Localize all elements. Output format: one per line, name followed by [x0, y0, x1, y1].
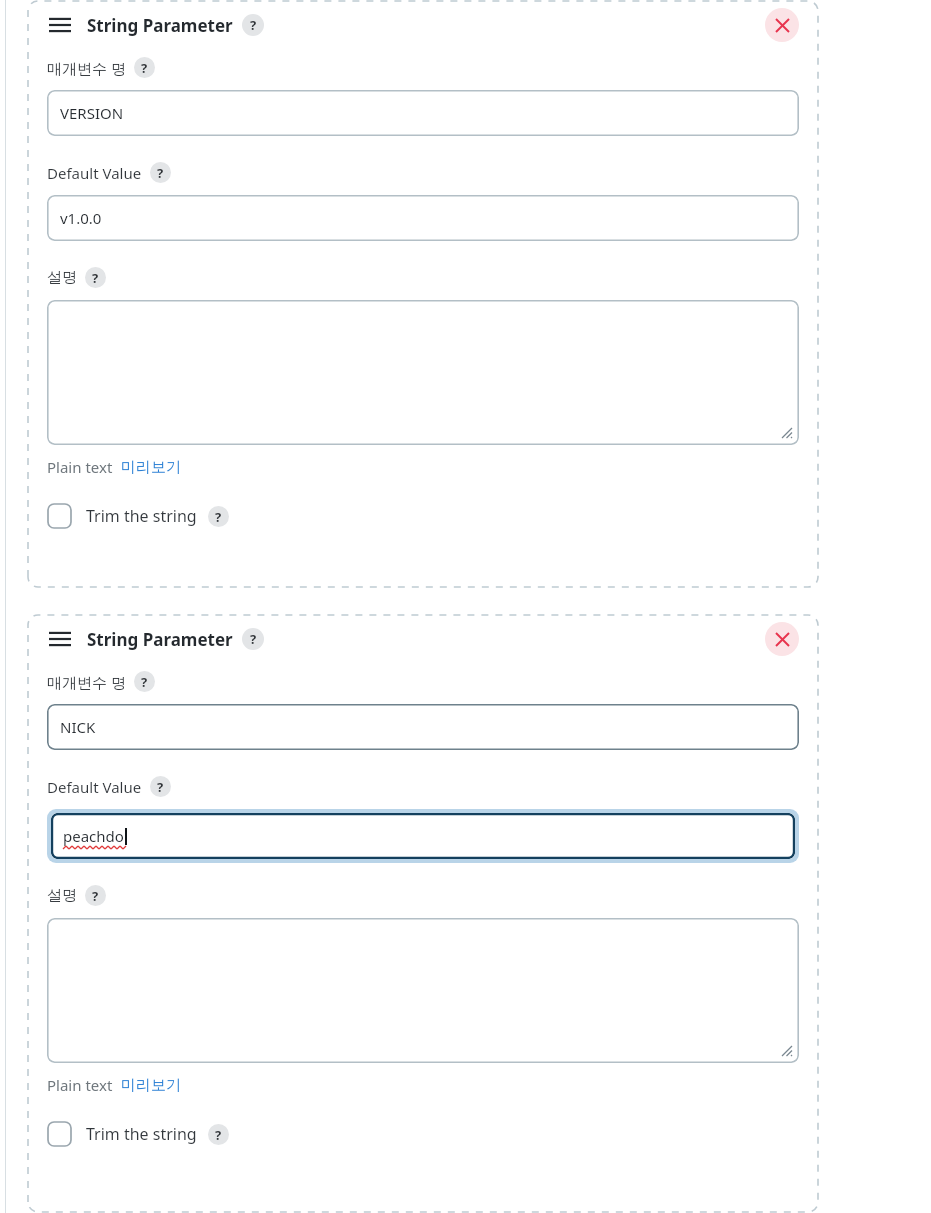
staticText: ?: [215, 508, 222, 526]
button[interactable]: Trim the string: [47, 1121, 229, 1147]
button[interactable]: ?: [242, 628, 264, 650]
staticText: Default Value: [47, 777, 142, 797]
button[interactable]: v1.0.0: [47, 195, 799, 241]
staticText: peachdo: [63, 826, 124, 846]
button[interactable]: [47, 918, 799, 1063]
button[interactable]: 미리보기: [121, 458, 181, 477]
staticText: NICK: [60, 717, 96, 737]
staticText: Default Value: [47, 163, 142, 183]
staticText: ?: [250, 16, 257, 34]
button[interactable]: Drag handle: [47, 14, 73, 36]
staticText: VERSION: [60, 103, 124, 123]
button[interactable]: ?: [150, 162, 171, 183]
button[interactable]: ?: [208, 506, 229, 527]
button[interactable]: peachdo: [51, 813, 795, 859]
staticText: Plain text: [47, 457, 113, 477]
staticText: 매개변수 명: [47, 58, 126, 78]
button[interactable]: VERSION: [47, 90, 799, 136]
staticText: 설명: [47, 886, 77, 905]
staticText: ?: [141, 673, 148, 691]
button[interactable]: NICK: [47, 704, 799, 750]
staticText: ?: [250, 630, 257, 648]
staticText: ?: [157, 778, 164, 796]
staticText: ?: [92, 269, 99, 287]
staticText: ?: [215, 1126, 222, 1144]
staticText: ?: [92, 887, 99, 905]
button[interactable]: ?: [85, 267, 106, 288]
button[interactable]: Delete parameter: [765, 8, 799, 42]
staticText: String Parameter: [87, 628, 233, 651]
button[interactable]: ?: [85, 885, 106, 906]
staticText: 매개변수 명: [47, 672, 126, 692]
button[interactable]: ?: [150, 776, 171, 797]
button[interactable]: Drag handle: [47, 628, 73, 650]
staticText: Trim the string: [86, 1123, 197, 1145]
staticText: ?: [157, 164, 164, 182]
staticText: ?: [141, 59, 148, 77]
button[interactable]: ?: [134, 57, 155, 78]
staticText: 설명: [47, 268, 77, 287]
staticText: Plain text: [47, 1075, 113, 1095]
button[interactable]: ?: [134, 671, 155, 692]
button[interactable]: Trim the string: [47, 503, 229, 529]
button[interactable]: [47, 300, 799, 445]
staticText: Trim the string: [86, 505, 197, 527]
staticText: String Parameter: [87, 14, 233, 37]
button[interactable]: Delete parameter: [765, 622, 799, 656]
button[interactable]: 미리보기: [121, 1076, 181, 1095]
button[interactable]: ?: [208, 1124, 229, 1145]
button[interactable]: ?: [242, 14, 264, 36]
staticText: v1.0.0: [60, 208, 102, 228]
